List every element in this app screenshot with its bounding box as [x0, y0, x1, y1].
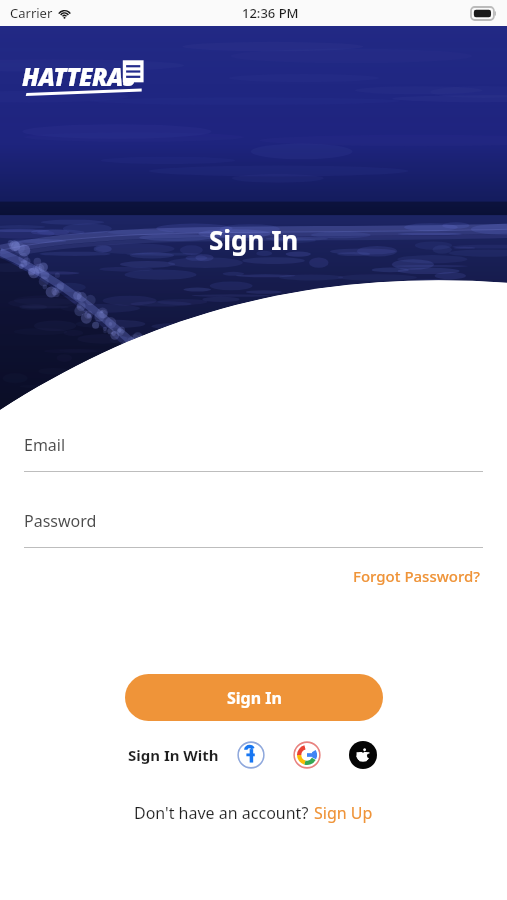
- staticText: Sign Up: [314, 802, 373, 824]
- staticText: Don't have an account?: [134, 802, 313, 824]
- staticText: Sign In: [209, 222, 299, 257]
- button[interactable]: Sign in with Facebook: [235, 739, 267, 771]
- staticText: HATTERAS: [22, 60, 136, 93]
- button[interactable]: Sign in with Apple: [347, 739, 379, 771]
- button[interactable]: Password: [24, 510, 483, 548]
- button[interactable]: Sign in with Google: [291, 739, 323, 771]
- staticText: Password: [24, 510, 97, 532]
- staticText: Sign In With: [128, 745, 219, 765]
- staticText: Email: [24, 434, 66, 456]
- staticText: Carrier: [10, 4, 53, 22]
- staticText: Sign In: [227, 687, 282, 709]
- button[interactable]: Sign In: [125, 674, 383, 721]
- button[interactable]: Email: [24, 434, 483, 472]
- staticText: 12:36 PM: [242, 4, 299, 22]
- button[interactable]: Forgot Password?: [351, 562, 483, 590]
- staticText: Forgot Password?: [353, 566, 481, 586]
- button[interactable]: Sign Up: [313, 799, 374, 827]
